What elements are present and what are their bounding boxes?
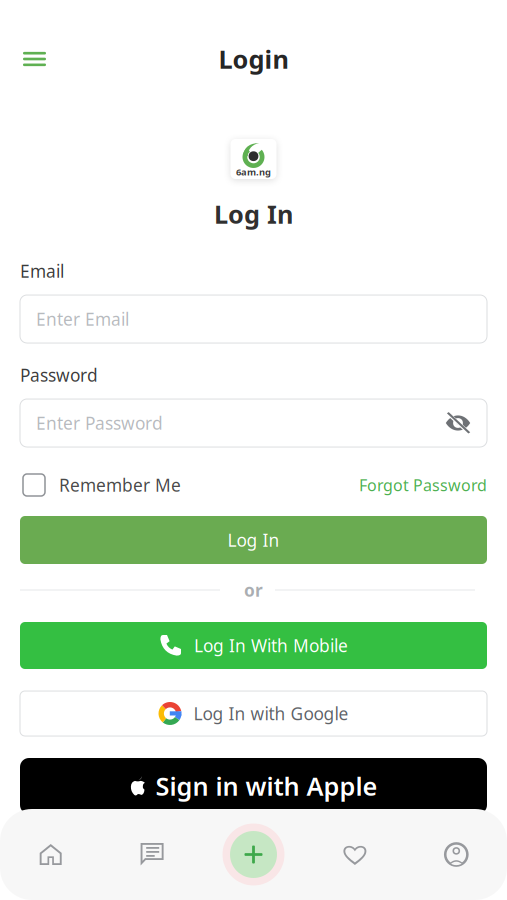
button[interactable]: Forgot Password [359,472,487,498]
button[interactable]: Favorites [304,828,406,880]
staticText: Password [20,363,98,386]
staticText: Log In [214,197,293,231]
button[interactable]: Sign in with Apple [20,758,487,814]
staticText: Login [218,42,288,76]
button[interactable]: Profile [406,828,507,880]
button[interactable]: Log In with Google [20,691,487,736]
button[interactable]: Log In With Mobile [20,622,487,669]
staticText: Log In With Mobile [194,634,348,657]
staticText: Log In [227,528,279,551]
staticText: or [244,578,263,601]
staticText: Sign in with Apple [155,769,377,803]
button[interactable]: Remember Me [23,472,181,498]
button[interactable]: Messages [101,828,203,880]
button[interactable]: Log In [20,516,487,564]
staticText: Log In with Google [193,702,348,725]
button[interactable]: Menu [12,39,57,78]
staticText: 6am.ng [236,166,271,178]
staticText: Email [20,259,64,282]
staticText: Enter Password [36,411,163,434]
staticText: Remember Me [59,473,181,496]
button[interactable]: Add [203,828,304,880]
staticText: Enter Email [36,307,129,330]
staticText: Forgot Password [359,474,487,496]
button[interactable]: Home [0,828,101,880]
button[interactable]: Show password [445,411,471,434]
